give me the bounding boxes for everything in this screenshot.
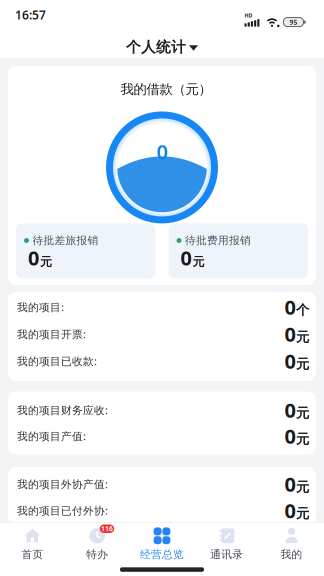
staticText: 元 <box>296 479 309 495</box>
staticText: 我的项目财务应收: <box>17 403 108 417</box>
staticText: 我的项目产值: <box>17 429 86 443</box>
staticText: 我的 <box>281 548 303 561</box>
button[interactable]: 特办 <box>65 527 130 561</box>
staticText: 元 <box>296 356 309 372</box>
staticText: 特办 <box>86 548 108 561</box>
staticText: 元 <box>296 329 309 345</box>
staticText: 0 <box>284 348 295 374</box>
staticText: 我的借款（元） <box>120 81 211 97</box>
staticText: 0 <box>284 497 295 524</box>
staticText: 0 <box>284 423 295 449</box>
staticText: 个人统计 <box>126 38 186 56</box>
staticText: 0 <box>180 244 191 271</box>
staticText: 0 <box>284 397 295 423</box>
staticText: 个 <box>296 302 309 318</box>
staticText: 0 <box>284 321 295 347</box>
staticText: 0 <box>28 244 39 271</box>
staticText: 元 <box>296 405 309 421</box>
staticText: 元 <box>192 254 204 269</box>
staticText: 元 <box>296 505 309 522</box>
button[interactable]: 切换统计 <box>126 35 198 53</box>
staticText: 我的项目开票: <box>17 327 86 341</box>
staticText: 经营总览 <box>140 548 184 561</box>
staticText: 通讯录 <box>210 548 243 561</box>
button[interactable]: 待批差旅报销 <box>16 223 155 278</box>
staticText: 0 <box>284 471 295 497</box>
button[interactable]: 首页 <box>0 527 65 561</box>
button[interactable]: 通讯录 <box>194 527 259 561</box>
staticText: HD <box>244 12 252 19</box>
staticText: 116 <box>101 524 113 533</box>
staticText: 我的项目已付外协: <box>17 503 108 518</box>
button[interactable]: 待批费用报销 <box>168 223 308 278</box>
staticText: 待批费用报销 <box>185 234 251 247</box>
staticText: 首页 <box>21 548 43 561</box>
staticText: 0 <box>156 138 167 165</box>
button[interactable]: 经营总览 <box>130 527 194 561</box>
staticText: 我的项目外协产值: <box>17 477 108 491</box>
staticText: 元 <box>40 254 52 269</box>
staticText: 16:57 <box>15 7 46 23</box>
staticText: 我的项目已收款: <box>17 354 97 368</box>
staticText: 元 <box>296 431 309 447</box>
staticText: 我的项目: <box>17 300 64 314</box>
button[interactable]: 我的 <box>259 527 324 561</box>
staticText: 待批差旅报销 <box>32 234 98 247</box>
staticText: 95 <box>289 18 297 27</box>
staticText: 0 <box>284 294 295 320</box>
